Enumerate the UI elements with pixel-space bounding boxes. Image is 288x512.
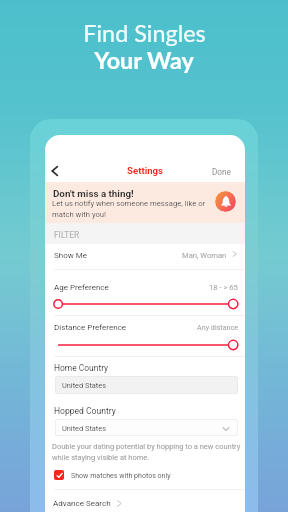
button[interactable]: Advance Search [52, 495, 132, 512]
staticText: 18 - > 65 [209, 283, 238, 292]
staticText: Your Way [94, 46, 194, 74]
staticText: Let us notify when someone message, like… [52, 199, 206, 219]
button[interactable]: Done [212, 167, 231, 177]
staticText: Any distance [197, 323, 239, 331]
button[interactable] [45, 182, 245, 223]
button[interactable]: Back [45, 160, 64, 181]
staticText: FILTER [54, 230, 80, 240]
button[interactable]: Show matches with photos only [52, 467, 182, 483]
button[interactable] [55, 376, 238, 394]
staticText: Distance Preference [54, 323, 127, 332]
staticText: Age Preference [54, 283, 109, 292]
staticText: United States [62, 424, 106, 433]
staticText: Find Singles [83, 19, 206, 47]
staticText: Advance Search [53, 499, 111, 508]
staticText: Double your dating potential by hopping … [52, 442, 241, 462]
button[interactable] [55, 419, 238, 436]
staticText: Don't miss a thing! [53, 188, 134, 199]
staticText: Home Country [54, 363, 109, 373]
staticText: Show matches with photos only [71, 471, 171, 479]
staticText: Man, Woman [182, 251, 227, 260]
button[interactable]: Settings [127, 165, 163, 176]
staticText: United States [62, 381, 106, 390]
staticText: Show Me [54, 251, 88, 260]
button[interactable]: Enable notifications [215, 191, 236, 212]
staticText: Hopped Country [54, 406, 116, 416]
